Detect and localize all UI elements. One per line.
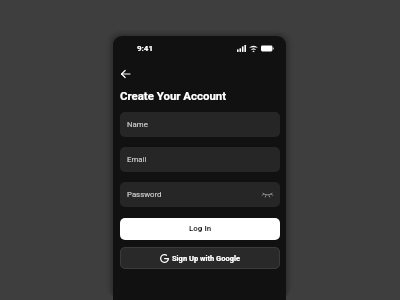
staticText: Sign Up with Google [172,254,240,263]
button[interactable]: Sign Up with Google [120,247,280,269]
button[interactable]: Password [120,182,280,207]
staticText: 9:41 [137,44,154,53]
staticText: Email [127,155,147,164]
button[interactable]: Name [120,112,280,137]
button[interactable]: Email [120,147,280,172]
button[interactable]: Log In [120,218,280,240]
other: Show password [262,191,273,198]
staticText: Password [127,190,162,199]
button[interactable]: Back [117,66,133,82]
staticText: Create Your Account [120,89,227,102]
staticText: Log In [189,224,212,233]
staticText: Name [127,120,148,129]
